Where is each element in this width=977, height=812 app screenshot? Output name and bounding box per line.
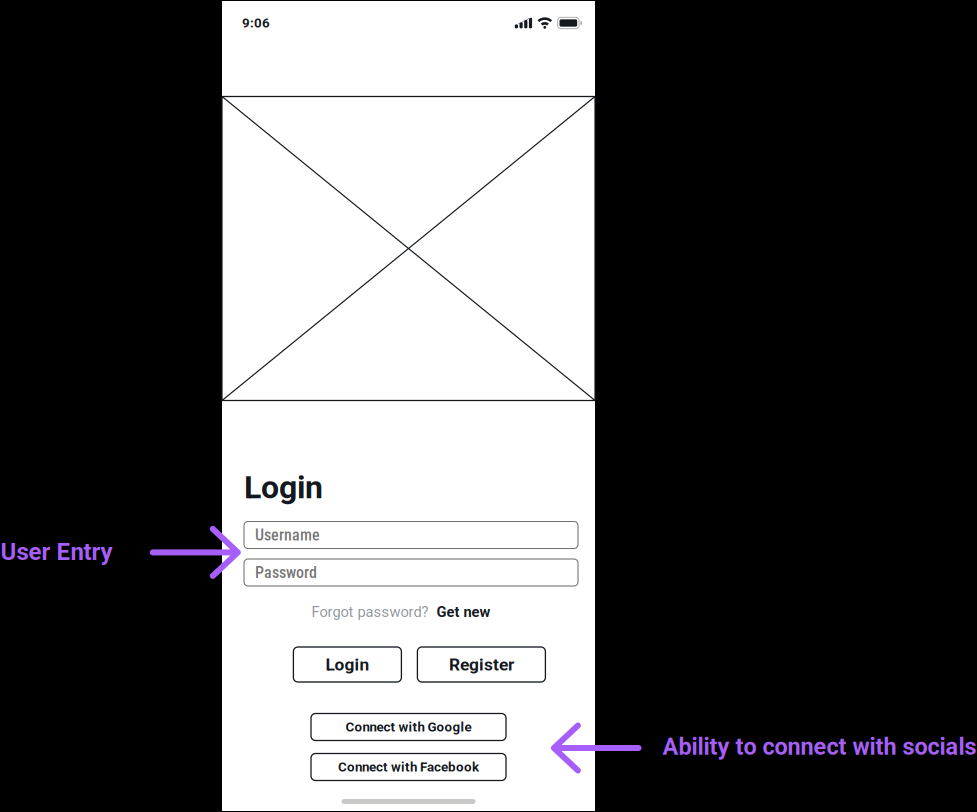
- button[interactable]: Username: [244, 521, 578, 548]
- staticText: Register: [449, 654, 514, 675]
- button[interactable]: Register: [417, 647, 545, 682]
- button[interactable]: Get new: [436, 603, 490, 621]
- staticText: Forgot password?: [311, 603, 428, 621]
- button[interactable]: Connect with Google: [311, 713, 506, 740]
- staticText: Connect with Facebook: [338, 759, 479, 775]
- staticText: Login: [325, 654, 369, 675]
- button[interactable]: Connect with Facebook: [311, 753, 506, 780]
- staticText: Login: [244, 468, 323, 506]
- staticText: Connect with Google: [345, 719, 471, 735]
- staticText: Ability to connect with socials: [662, 733, 976, 761]
- staticText: Password: [255, 563, 317, 582]
- staticText: Get new: [436, 603, 490, 621]
- staticText: 9:06: [242, 15, 270, 31]
- button[interactable]: Login: [293, 647, 401, 682]
- button[interactable]: Password: [244, 559, 578, 586]
- staticText: User Entry: [0, 538, 112, 566]
- staticText: Username: [255, 526, 320, 544]
